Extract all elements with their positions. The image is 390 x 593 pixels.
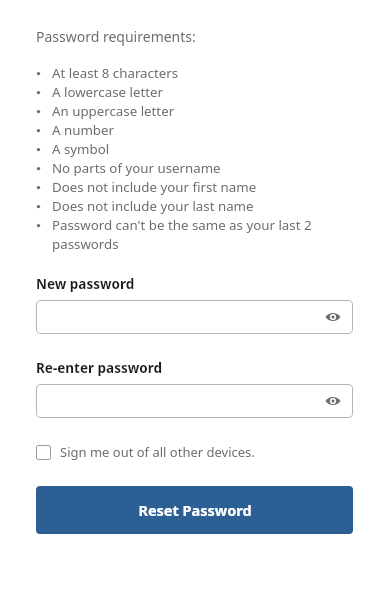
button[interactable]: Show password — [36, 384, 353, 418]
button[interactable]: Show password — [323, 391, 343, 411]
staticText: Does not include your first name — [52, 178, 257, 196]
staticText: At least 8 characters — [52, 64, 179, 82]
staticText: Password can't be the same as your last … — [52, 216, 353, 253]
button[interactable]: Show password — [36, 300, 353, 334]
staticText: A symbol — [52, 140, 110, 158]
button[interactable]: Reset Password — [36, 486, 353, 534]
staticText: An uppercase letter — [52, 102, 175, 120]
button[interactable]: Show password — [323, 307, 343, 327]
button[interactable]: Sign me out of all other devices. — [36, 443, 353, 461]
staticText: Does not include your last name — [52, 197, 254, 215]
staticText: New password — [36, 275, 135, 293]
staticText: No parts of your username — [52, 159, 221, 177]
staticText: Password requirements: — [36, 27, 196, 46]
staticText: Re-enter password — [36, 359, 162, 377]
staticText: A lowercase letter — [52, 83, 164, 101]
staticText: Reset Password — [138, 500, 252, 520]
staticText: Sign me out of all other devices. — [60, 443, 255, 461]
staticText: A number — [52, 121, 114, 139]
